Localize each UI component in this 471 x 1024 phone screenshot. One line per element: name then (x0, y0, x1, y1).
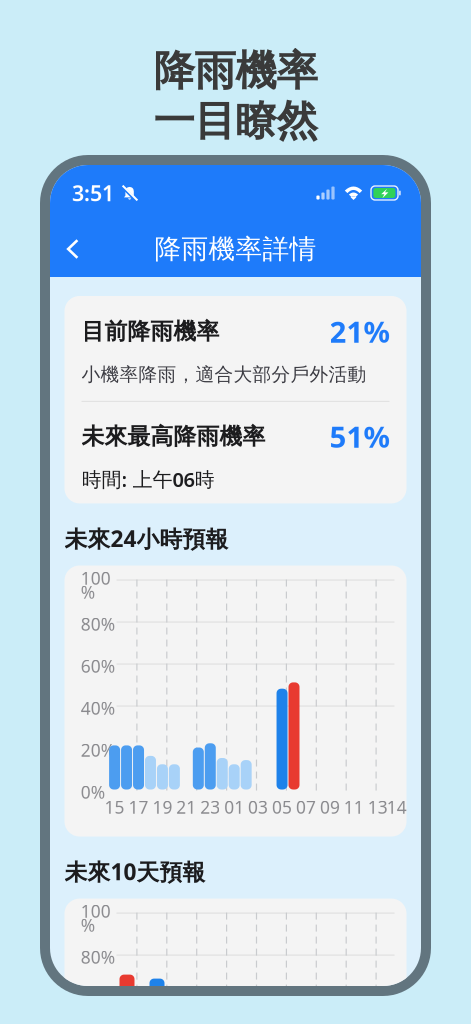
staticText: 03 (248, 795, 268, 818)
staticText: 21% (329, 312, 389, 351)
staticText: 40% (81, 696, 115, 719)
staticText: 21 (176, 795, 196, 818)
staticText: 100 (81, 900, 111, 923)
staticText: % (81, 580, 95, 603)
staticText: 09 (320, 795, 340, 818)
staticText: 3:51 (72, 179, 114, 207)
staticText: 100 (81, 566, 111, 589)
button[interactable]: 返回 (50, 227, 96, 271)
staticText: 時間: 上午06時 (81, 466, 214, 492)
staticText: 未來最高降雨機率 (81, 422, 265, 450)
staticText: 07 (296, 795, 316, 818)
staticText: % (81, 914, 95, 937)
staticText: 23 (200, 795, 220, 818)
staticText: 20% (81, 738, 115, 761)
staticText: 19 (152, 795, 172, 818)
staticText: 11 (344, 795, 364, 818)
staticText: 降雨機率 (153, 46, 317, 96)
staticText: 05 (272, 795, 292, 818)
staticText: 未來24小時預報 (64, 523, 228, 553)
staticText: 13 (368, 795, 388, 818)
staticText: 80% (81, 946, 115, 969)
staticText: 降雨機率詳情 (154, 233, 316, 265)
staticText: 01 (224, 795, 244, 818)
staticText: 60% (81, 988, 115, 1011)
staticText: 15 (105, 795, 125, 818)
staticText: 60% (81, 654, 115, 677)
staticText: 51% (329, 417, 389, 456)
staticText: 小機率降雨，適合大部分戶外活動 (81, 363, 366, 386)
staticText: 一目瞭然 (153, 96, 317, 146)
staticText: 0% (81, 780, 105, 803)
staticText: 17 (128, 795, 148, 818)
staticText: 目前降雨機率 (81, 318, 219, 345)
staticText: 14 (387, 795, 407, 818)
staticText: 80% (81, 612, 115, 635)
staticText: 未來10天預報 (64, 856, 205, 887)
